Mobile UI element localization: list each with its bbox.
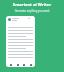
button[interactable]: nav item [8, 62, 13, 67]
button[interactable]: nav item [15, 62, 20, 67]
button[interactable]: nav item [21, 62, 26, 67]
button[interactable]: nav item [28, 62, 33, 67]
staticText: Generate anything you want [0, 9, 64, 13]
staticText: Smartest ai Writer [0, 2, 64, 8]
